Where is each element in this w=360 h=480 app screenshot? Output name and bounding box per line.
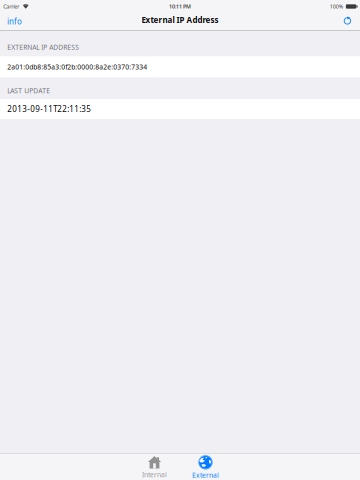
button[interactable]: Refresh xyxy=(335,13,360,30)
staticText: 2013-09-11T22:11:35 xyxy=(7,104,91,114)
staticText: External xyxy=(192,471,219,479)
staticText: info xyxy=(7,16,22,27)
staticText: EXTERNAL IP ADDRESS xyxy=(7,43,79,52)
button[interactable]: External xyxy=(180,454,231,480)
staticText: 2a01:0db8:85a3:0f2b:0000:8a2e:0370:7334 xyxy=(7,62,147,71)
staticText: Internal xyxy=(142,470,167,479)
staticText: 10:11 PM xyxy=(169,3,191,10)
staticText: 100% xyxy=(330,3,343,10)
staticText: LAST UPDATE xyxy=(7,86,50,95)
staticText: Carrier xyxy=(3,3,19,10)
button[interactable]: info xyxy=(0,13,29,30)
button[interactable]: Internal xyxy=(129,454,180,480)
staticText: External IP Address xyxy=(141,15,218,25)
